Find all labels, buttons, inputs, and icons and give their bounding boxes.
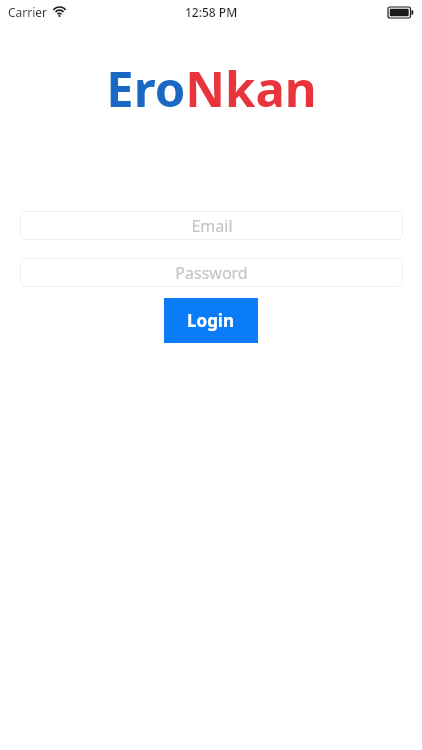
button[interactable]: Password	[20, 258, 403, 287]
button[interactable]: Email	[20, 211, 403, 240]
staticText: Password	[175, 262, 248, 284]
button[interactable]: Login	[164, 298, 258, 343]
staticText: Carrier	[8, 4, 48, 20]
staticText: Login	[187, 309, 235, 332]
staticText: 12:58 PM	[185, 4, 238, 20]
staticText: Email	[191, 215, 233, 237]
staticText: EroNkan	[106, 55, 317, 107]
